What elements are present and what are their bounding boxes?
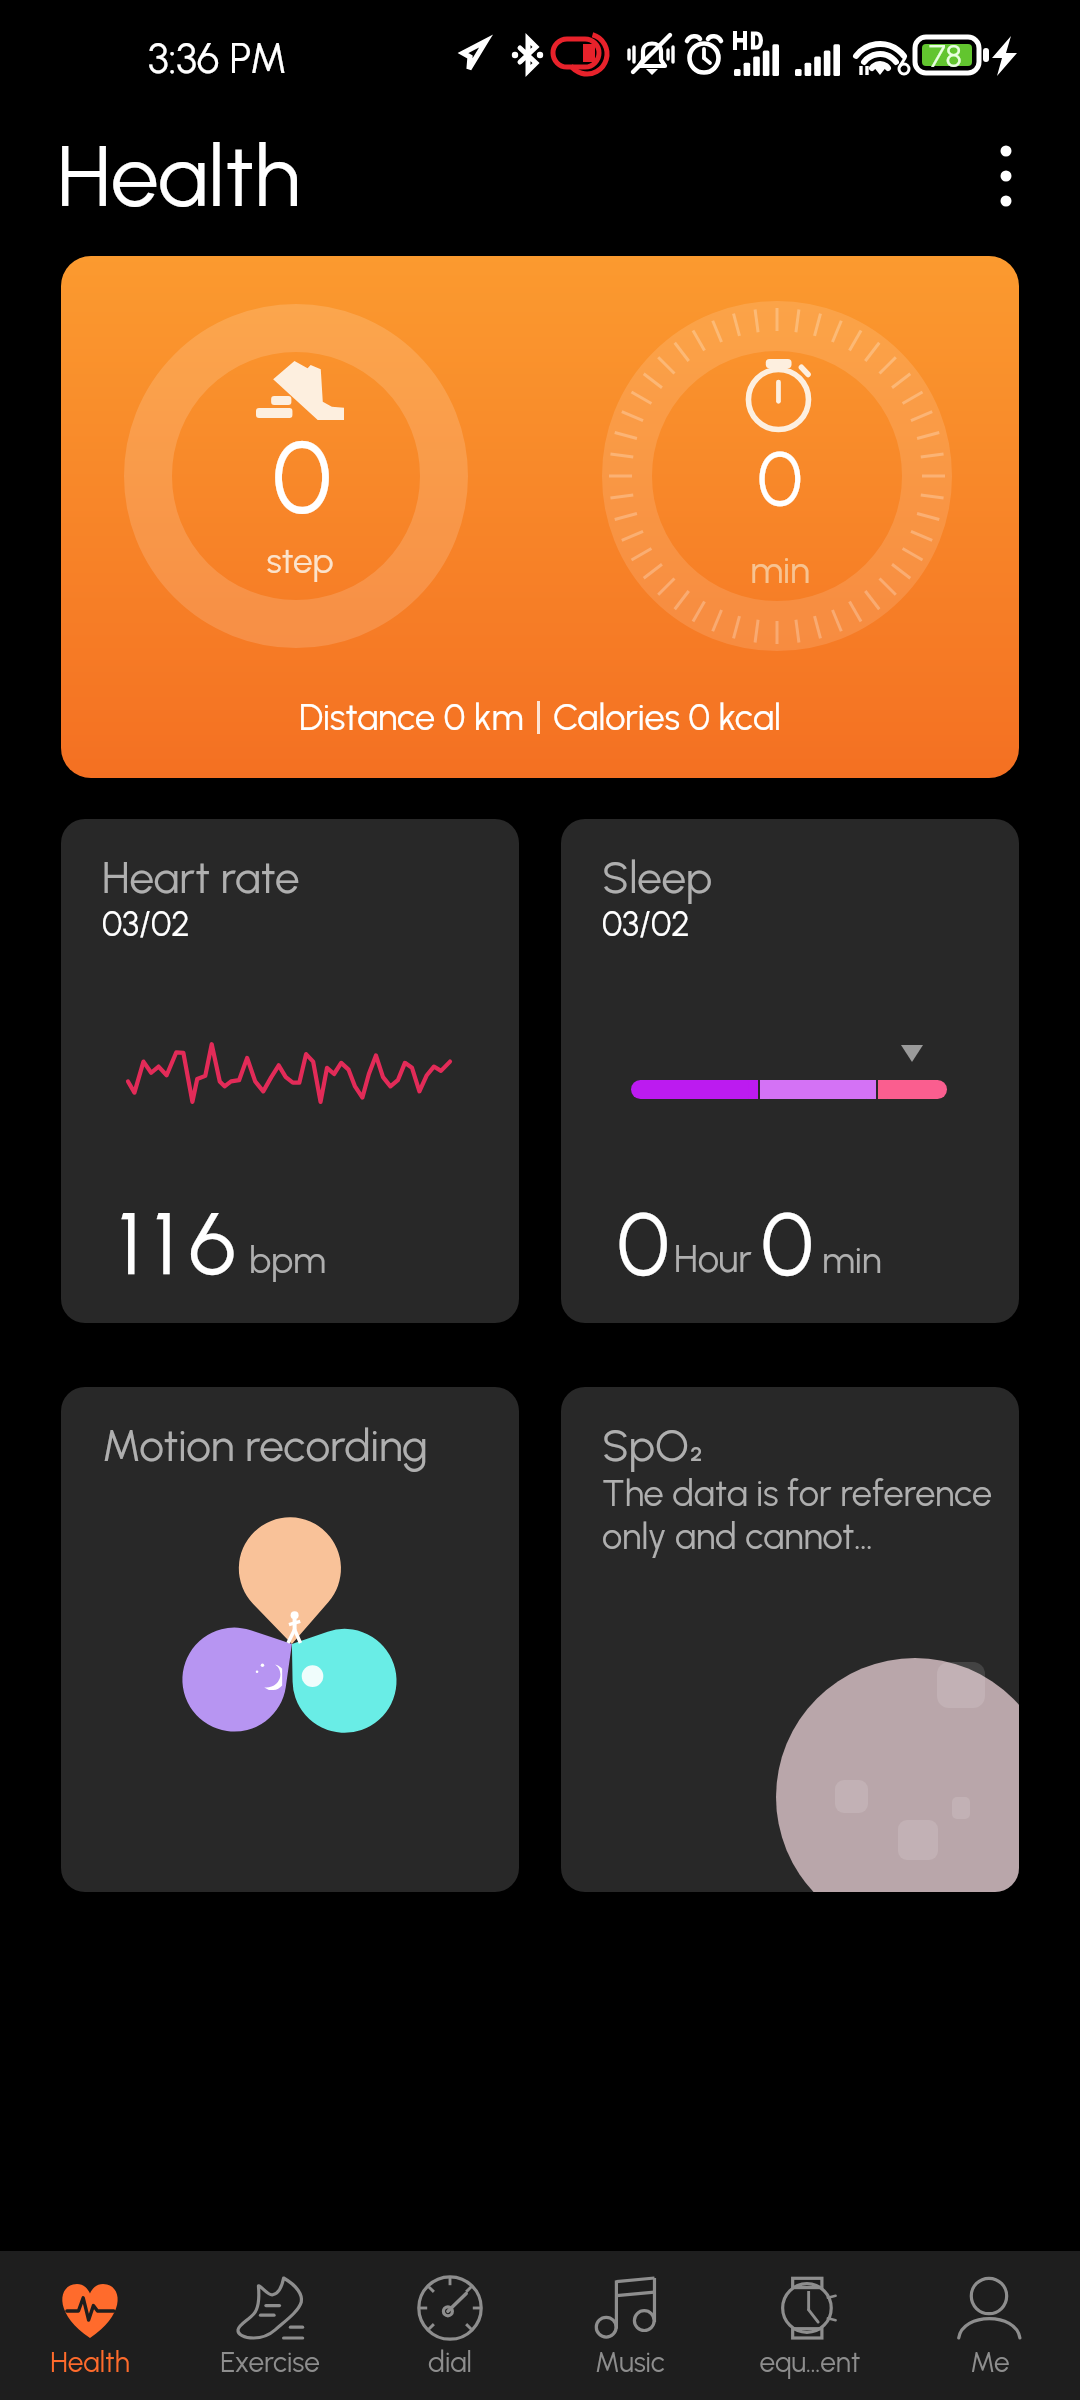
- staticText: 78: [929, 38, 962, 75]
- staticText: Heart rate: [102, 851, 300, 904]
- staticText: Distance 0 km: [299, 696, 524, 739]
- button[interactable]: equ…ent: [720, 2251, 900, 2400]
- button[interactable]: Exercise: [180, 2251, 360, 2400]
- staticText: step: [128, 540, 472, 582]
- button[interactable]: Sleep: [561, 819, 1019, 1323]
- staticText: Health: [0, 2345, 180, 2379]
- staticText: SpO₂: [602, 1419, 705, 1472]
- button[interactable]: Music: [540, 2251, 720, 2400]
- staticText: 3:36 PM: [148, 33, 287, 83]
- button[interactable]: Heart rate: [61, 819, 519, 1323]
- staticText: min: [822, 1238, 882, 1282]
- staticText: Calories 0 kcal: [553, 696, 781, 739]
- staticText: Exercise: [180, 2345, 360, 2379]
- staticText: 0: [130, 418, 474, 538]
- button[interactable]: SpO₂: [561, 1387, 1019, 1892]
- staticText: 116: [118, 1190, 249, 1296]
- staticText: dial: [360, 2345, 540, 2379]
- staticText: Music: [540, 2345, 720, 2379]
- button[interactable]: Health: [0, 2251, 180, 2400]
- staticText: 0: [617, 1190, 670, 1296]
- staticText: Hour: [674, 1236, 752, 1282]
- button[interactable]: Motion recording: [61, 1387, 519, 1892]
- staticText: 03/02: [102, 904, 190, 945]
- button[interactable]: dial: [360, 2251, 540, 2400]
- staticText: 03/02: [602, 904, 690, 945]
- staticText: Motion recording: [102, 1419, 428, 1472]
- staticText: equ…ent: [720, 2345, 900, 2379]
- staticText: Health: [57, 124, 301, 227]
- button[interactable]: Me: [900, 2251, 1080, 2400]
- staticText: 0: [761, 1190, 814, 1296]
- staticText: min: [605, 548, 955, 592]
- staticText: The data is for reference only and canno…: [602, 1472, 1002, 1558]
- staticText: bpm: [249, 1238, 326, 1282]
- staticText: 0: [605, 433, 955, 524]
- staticText: Sleep: [602, 851, 713, 904]
- button[interactable]: 0: [61, 256, 1019, 778]
- button[interactable]: More options: [962, 132, 1050, 220]
- staticText: Me: [900, 2345, 1080, 2379]
